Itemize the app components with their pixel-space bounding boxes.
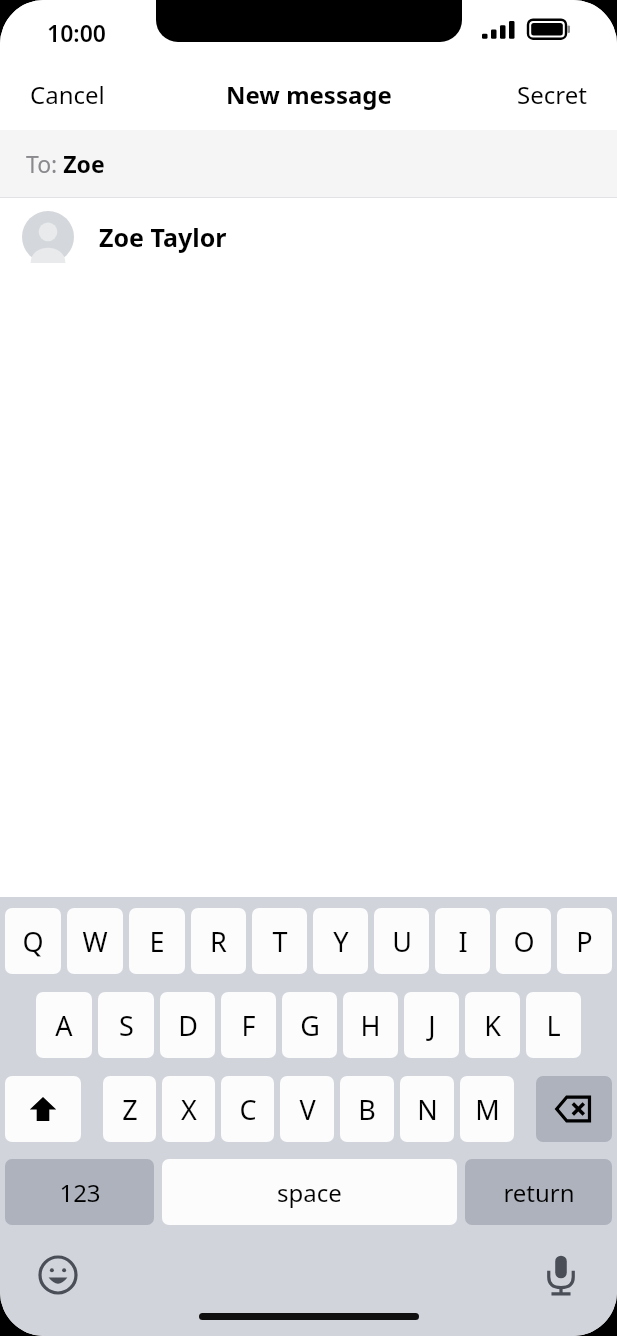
staticText: N (417, 1091, 438, 1128)
button[interactable]: L (526, 992, 581, 1058)
staticText: Secret (517, 78, 587, 111)
staticText: V (299, 1091, 316, 1128)
button[interactable]: Cancel (0, 64, 135, 125)
button[interactable]: H (343, 992, 398, 1058)
staticText: O (513, 923, 535, 960)
button[interactable]: V (280, 1076, 334, 1142)
staticText: T (272, 923, 288, 960)
staticText: K (484, 1007, 501, 1044)
staticText: M (475, 1091, 500, 1128)
button[interactable]: return (465, 1159, 612, 1225)
button[interactable]: Dictation (533, 1247, 589, 1303)
staticText: B (358, 1091, 376, 1128)
button[interactable]: D (160, 992, 215, 1058)
staticText: U (392, 923, 412, 960)
staticText: return (503, 1176, 575, 1209)
button[interactable]: F (221, 992, 276, 1058)
button[interactable]: X (162, 1076, 215, 1142)
staticText: P (576, 923, 593, 960)
staticText: New message (226, 78, 392, 111)
button[interactable]: Zoe Taylor (0, 198, 617, 276)
button[interactable]: A (36, 992, 92, 1058)
button[interactable]: space (162, 1159, 457, 1225)
staticText: D (178, 1007, 198, 1044)
button[interactable]: K (465, 992, 520, 1058)
button[interactable]: S (98, 992, 154, 1058)
staticText: Q (22, 923, 44, 960)
button[interactable]: M (460, 1076, 514, 1142)
button[interactable]: I (435, 908, 490, 974)
button[interactable]: Q (5, 908, 61, 974)
staticText: Cancel (30, 78, 105, 111)
button[interactable]: 123 (5, 1159, 154, 1225)
staticText: 123 (59, 1176, 101, 1209)
staticText: J (428, 1007, 436, 1044)
staticText: F (241, 1007, 256, 1044)
button[interactable]: R (191, 908, 246, 974)
staticText: G (300, 1007, 320, 1044)
staticText: Y (333, 923, 349, 960)
staticText: L (546, 1007, 561, 1044)
staticText: I (458, 923, 468, 960)
button[interactable]: W (67, 908, 123, 974)
button[interactable]: G (282, 992, 337, 1058)
staticText: C (239, 1091, 257, 1128)
button[interactable]: Z (103, 1076, 156, 1142)
button[interactable]: Y (313, 908, 368, 974)
button[interactable]: Emoji (30, 1247, 86, 1303)
button[interactable]: Shift (5, 1076, 81, 1142)
staticText: To: Zoe (26, 148, 105, 179)
button[interactable]: P (557, 908, 612, 974)
staticText: H (360, 1007, 381, 1044)
button[interactable]: Secret (487, 64, 617, 125)
button[interactable]: N (400, 1076, 454, 1142)
staticText: X (181, 1091, 197, 1128)
button[interactable]: O (496, 908, 551, 974)
button[interactable]: Backspace (536, 1076, 612, 1142)
button[interactable]: To: Zoe (0, 130, 617, 197)
staticText: A (55, 1007, 73, 1044)
staticText: E (149, 923, 165, 960)
button[interactable]: B (340, 1076, 394, 1142)
staticText: Zoe Taylor (99, 220, 227, 254)
button[interactable]: U (374, 908, 429, 974)
staticText: Z (122, 1091, 138, 1128)
staticText: 10:00 (47, 17, 106, 48)
button[interactable]: T (252, 908, 307, 974)
button[interactable]: C (221, 1076, 274, 1142)
button[interactable]: E (129, 908, 185, 974)
staticText: space (277, 1176, 342, 1209)
button[interactable]: J (404, 992, 459, 1058)
staticText: W (82, 923, 108, 960)
staticText: S (119, 1007, 134, 1044)
staticText: R (210, 923, 227, 960)
